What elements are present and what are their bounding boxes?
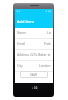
button[interactable]: City <box>17 61 51 71</box>
staticText: Liz <box>47 31 51 35</box>
button[interactable]: Email <box>17 39 51 49</box>
staticText: Park <box>44 42 51 46</box>
button[interactable]: Name <box>17 28 51 38</box>
button[interactable]: Address <box>17 50 51 60</box>
staticText: 221b Baker st <box>30 53 51 57</box>
staticText: SAVE <box>30 73 38 77</box>
staticText: London <box>39 64 51 68</box>
staticText: Name <box>17 31 26 35</box>
staticText: City <box>17 64 23 68</box>
staticText: Email <box>17 42 26 46</box>
button[interactable]: SAVE <box>20 71 48 78</box>
staticText: LG <box>34 86 38 89</box>
staticText: Address <box>17 53 30 57</box>
staticText: Add item <box>17 19 34 24</box>
